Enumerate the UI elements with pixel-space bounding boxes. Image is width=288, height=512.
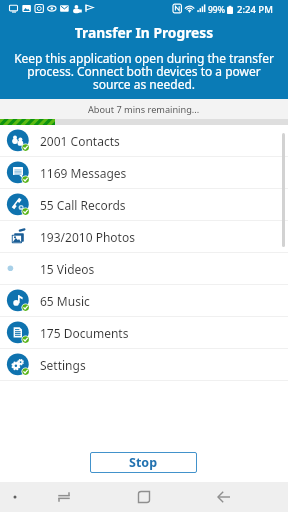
staticText: 2:24 PM [237,3,273,16]
button[interactable]: Settings [0,349,288,381]
button[interactable]: Stop [90,452,197,473]
button[interactable]: 15 Videos [0,253,288,285]
staticText: Keep this application open during the tr… [0,50,288,92]
staticText: Transfer In Progress [0,23,288,42]
button[interactable]: 193/2010 Photos [0,221,288,253]
button[interactable]: Hide navigation bar [0,482,35,512]
button[interactable]: 1169 Messages [0,157,288,189]
staticText: 2001 Contacts [40,133,120,149]
button[interactable]: 175 Documents [0,317,288,349]
button[interactable]: 2001 Contacts [0,125,288,157]
button[interactable]: 55 Call Records [0,189,288,221]
button[interactable]: Back [204,482,244,512]
staticText: 193/2010 Photos [40,229,135,245]
staticText: 1169 Messages [40,165,127,181]
button[interactable]: Recent apps [44,482,84,512]
staticText: About 7 mins remaining... [88,103,200,116]
staticText: Settings [40,357,86,373]
button[interactable]: Home [124,482,164,512]
staticText: 55 Call Records [40,197,126,213]
button[interactable]: 65 Music [0,285,288,317]
staticText: 175 Documents [40,325,129,341]
staticText: 99% [208,4,225,16]
staticText: 15 Videos [40,261,95,277]
staticText: Stop [129,454,158,471]
staticText: 65 Music [40,293,90,309]
